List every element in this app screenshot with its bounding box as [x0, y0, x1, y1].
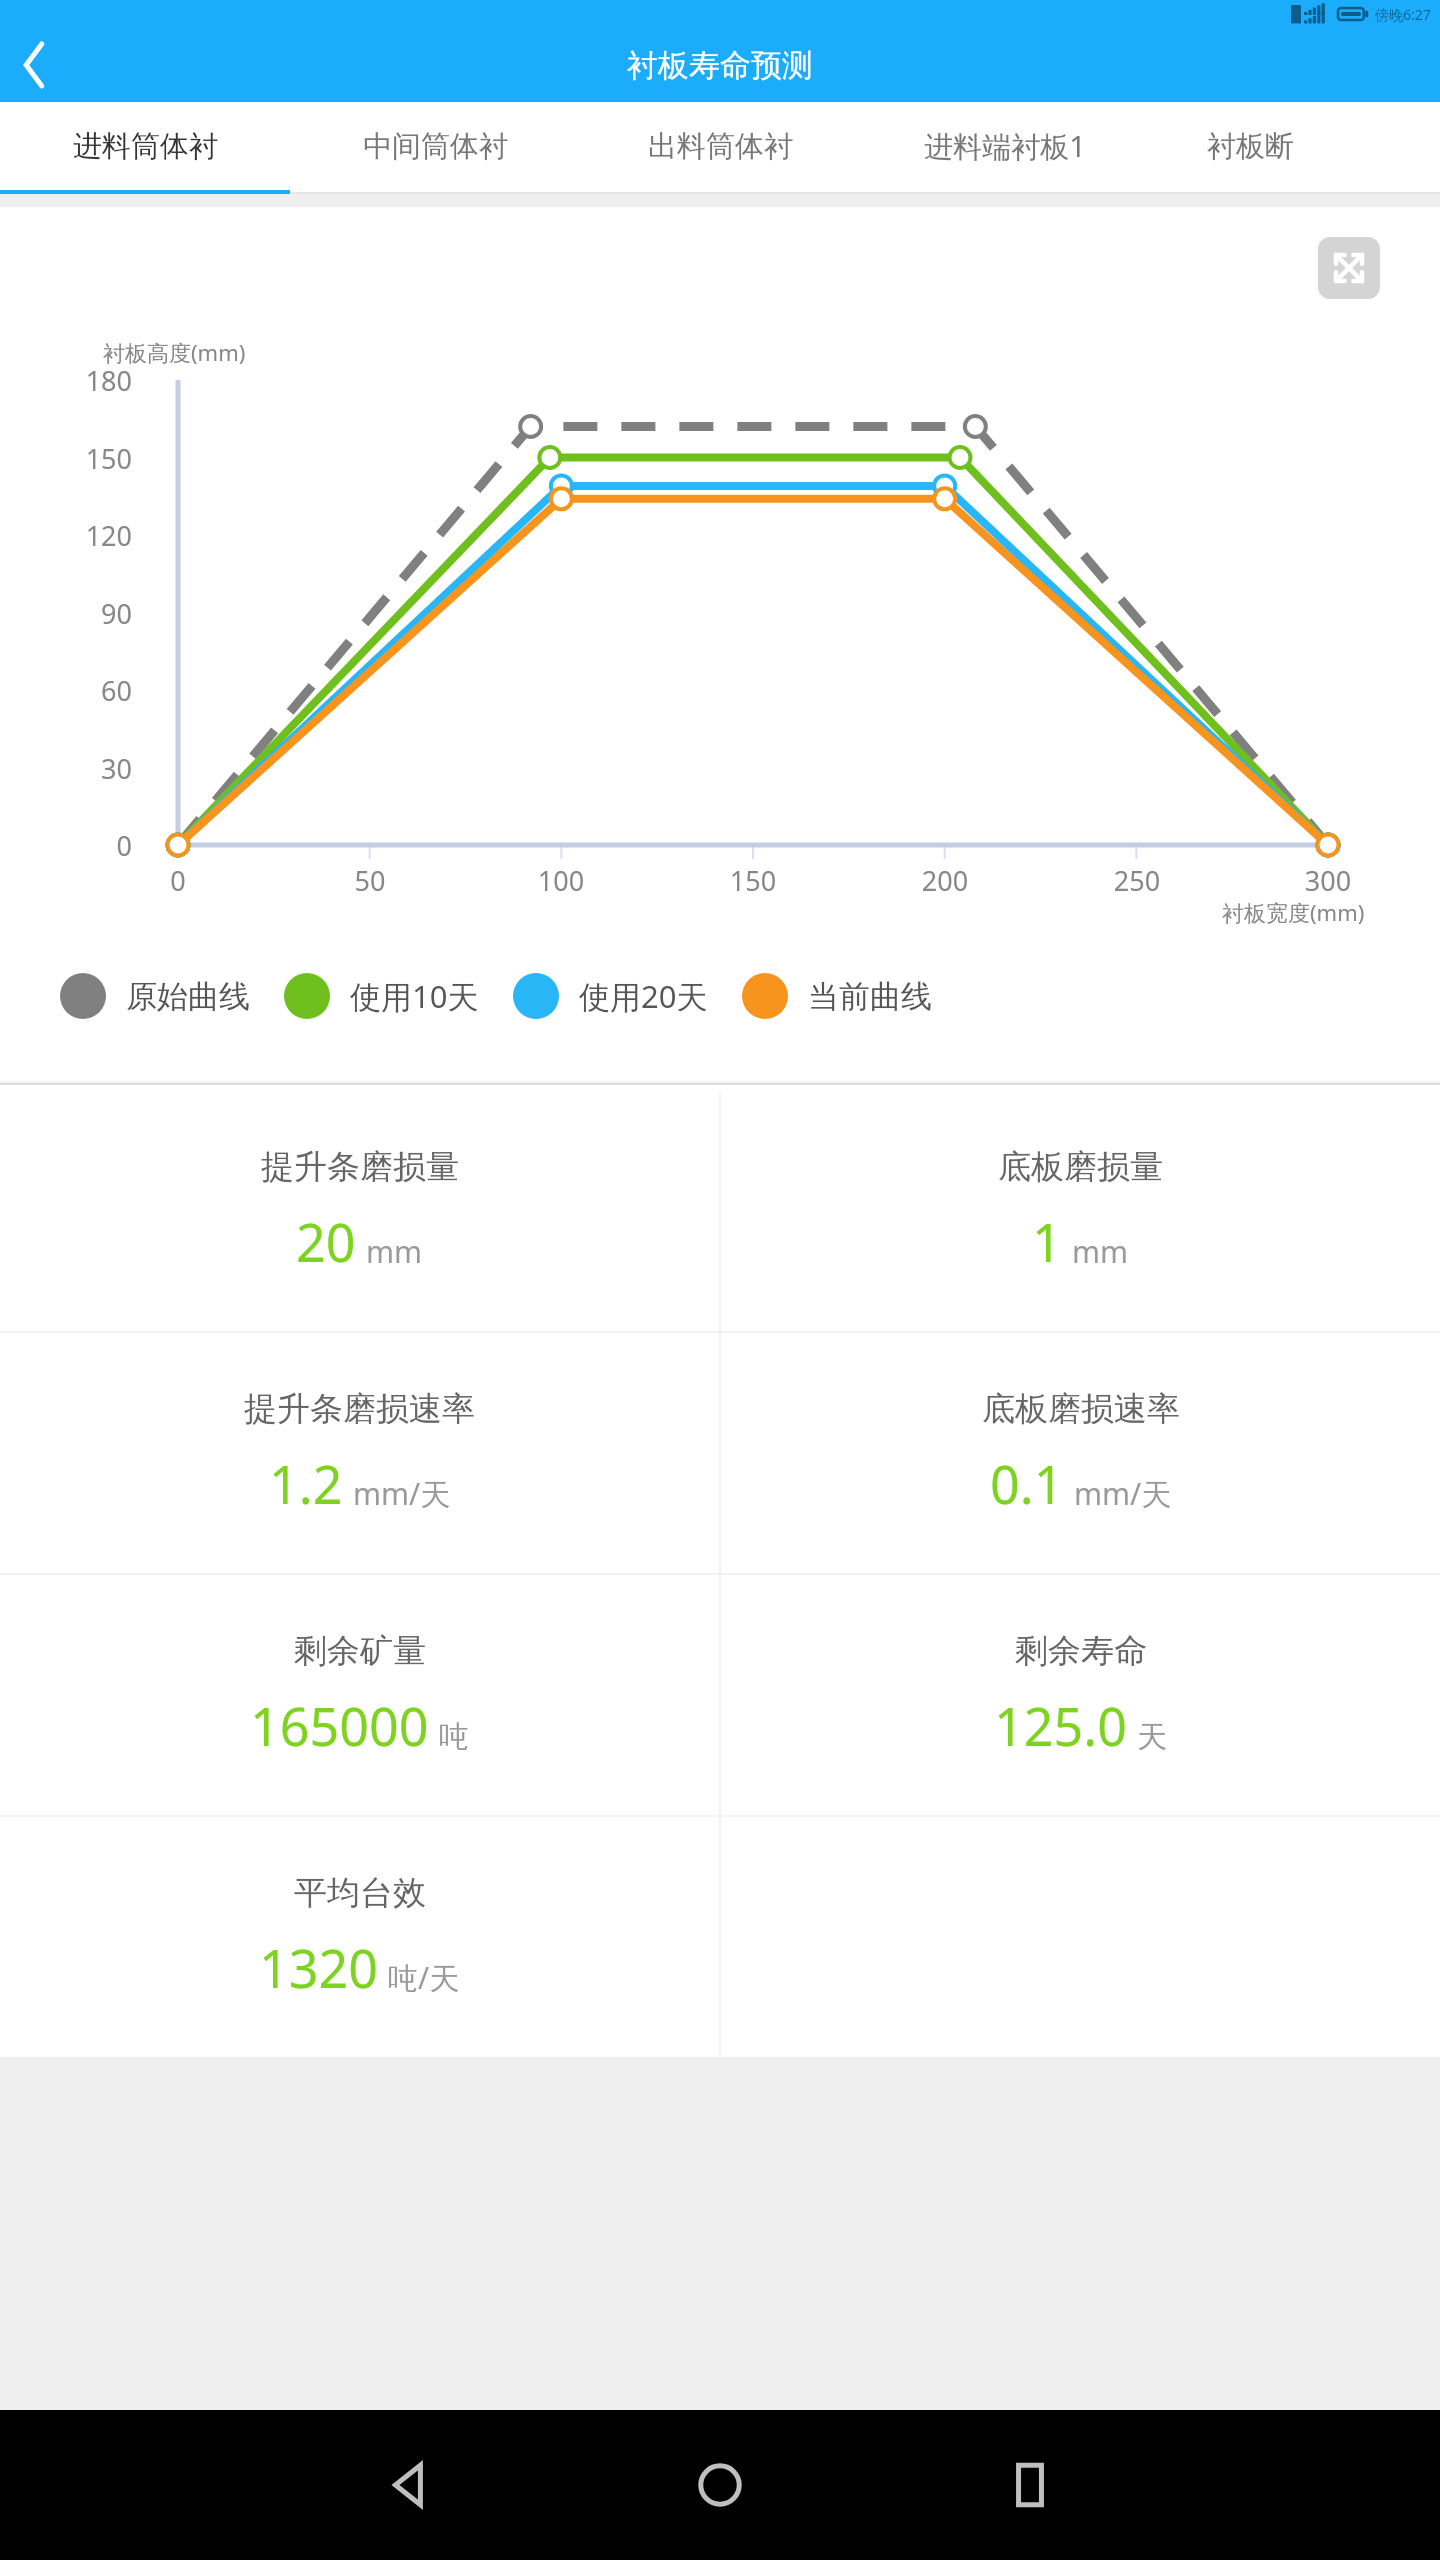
button[interactable]: 使用20天	[513, 973, 708, 1019]
staticText: 当前曲线	[808, 977, 932, 1016]
button[interactable]: 中间筒体衬	[290, 102, 580, 190]
staticText: 出料筒体衬	[648, 128, 793, 165]
staticText: 原始曲线	[126, 977, 250, 1016]
staticText: 1320	[259, 1932, 378, 2003]
staticText: 傍晚6:27	[1375, 5, 1431, 24]
button[interactable]: 衬板断	[1150, 102, 1350, 190]
staticText: 300	[1278, 862, 1378, 899]
staticText: 0.1	[990, 1448, 1064, 1519]
staticText: 200	[895, 862, 995, 899]
staticText: 衬板断	[1207, 128, 1294, 165]
staticText: 20	[296, 1206, 356, 1277]
staticText: 进料端衬板1	[924, 126, 1086, 166]
button[interactable]: 使用10天	[284, 973, 479, 1019]
staticText: 使用20天	[579, 975, 708, 1017]
staticText: 进料筒体衬	[73, 128, 218, 165]
button[interactable]: 剩余矿量	[0, 1575, 719, 1815]
staticText: 150	[14, 440, 132, 477]
staticText: 中间筒体衬	[363, 128, 508, 165]
staticText: 底板磨损量	[998, 1146, 1163, 1188]
staticText: 剩余寿命	[1015, 1630, 1147, 1672]
staticText: 天	[1137, 1718, 1167, 1756]
staticText: 底板磨损速率	[982, 1388, 1180, 1430]
button[interactable]: 原始曲线	[60, 973, 250, 1019]
staticText: 提升条磨损速率	[244, 1388, 475, 1430]
button[interactable]: 平均台效	[0, 1817, 719, 2057]
button[interactable]: Back	[330, 2410, 490, 2560]
staticText: 30	[14, 750, 132, 787]
button[interactable]: Home	[640, 2410, 800, 2560]
staticText: mm	[1072, 1231, 1129, 1272]
button[interactable]: 出料筒体衬	[580, 102, 860, 190]
staticText: mm/天	[353, 1473, 451, 1514]
button[interactable]: Back	[0, 30, 70, 100]
staticText: 1	[1032, 1206, 1062, 1277]
button[interactable]: 进料端衬板1	[860, 102, 1150, 190]
staticText: 剩余矿量	[294, 1630, 426, 1672]
staticText: 0	[128, 862, 228, 899]
staticText: 150	[703, 862, 803, 899]
staticText: 吨	[439, 1718, 469, 1756]
staticText: 180	[14, 362, 132, 399]
button[interactable]: 提升条磨损量	[0, 1091, 719, 1331]
staticText: 吨/天	[388, 1957, 460, 1998]
button[interactable]: Recents	[950, 2410, 1110, 2560]
staticText: 衬板高度(mm)	[103, 337, 246, 367]
staticText: 90	[14, 595, 132, 632]
staticText: 1.2	[269, 1448, 343, 1519]
staticText: 165000	[250, 1690, 429, 1761]
button[interactable]: 底板磨损量	[721, 1091, 1440, 1331]
staticText: 125.0	[994, 1690, 1127, 1761]
button[interactable]: Fullscreen	[1318, 237, 1380, 299]
staticText: 使用10天	[350, 975, 479, 1017]
staticText: 平均台效	[294, 1872, 426, 1914]
button[interactable]: 底板磨损速率	[721, 1333, 1440, 1573]
button[interactable]: 进料筒体衬	[0, 102, 290, 190]
staticText: mm	[366, 1231, 423, 1272]
button[interactable]: 剩余寿命	[721, 1575, 1440, 1815]
staticText: 提升条磨损量	[261, 1146, 459, 1188]
button[interactable]: 提升条磨损速率	[0, 1333, 719, 1573]
staticText: 60	[14, 672, 132, 709]
staticText: 0	[14, 827, 132, 864]
staticText: 50	[320, 862, 420, 899]
staticText: 120	[14, 517, 132, 554]
staticText: 衬板寿命预测	[627, 46, 813, 85]
staticText: 衬板宽度(mm)	[1222, 897, 1365, 927]
staticText: 250	[1087, 862, 1187, 899]
staticText: 100	[511, 862, 611, 899]
button[interactable]: 当前曲线	[742, 973, 932, 1019]
staticText: mm/天	[1074, 1473, 1172, 1514]
